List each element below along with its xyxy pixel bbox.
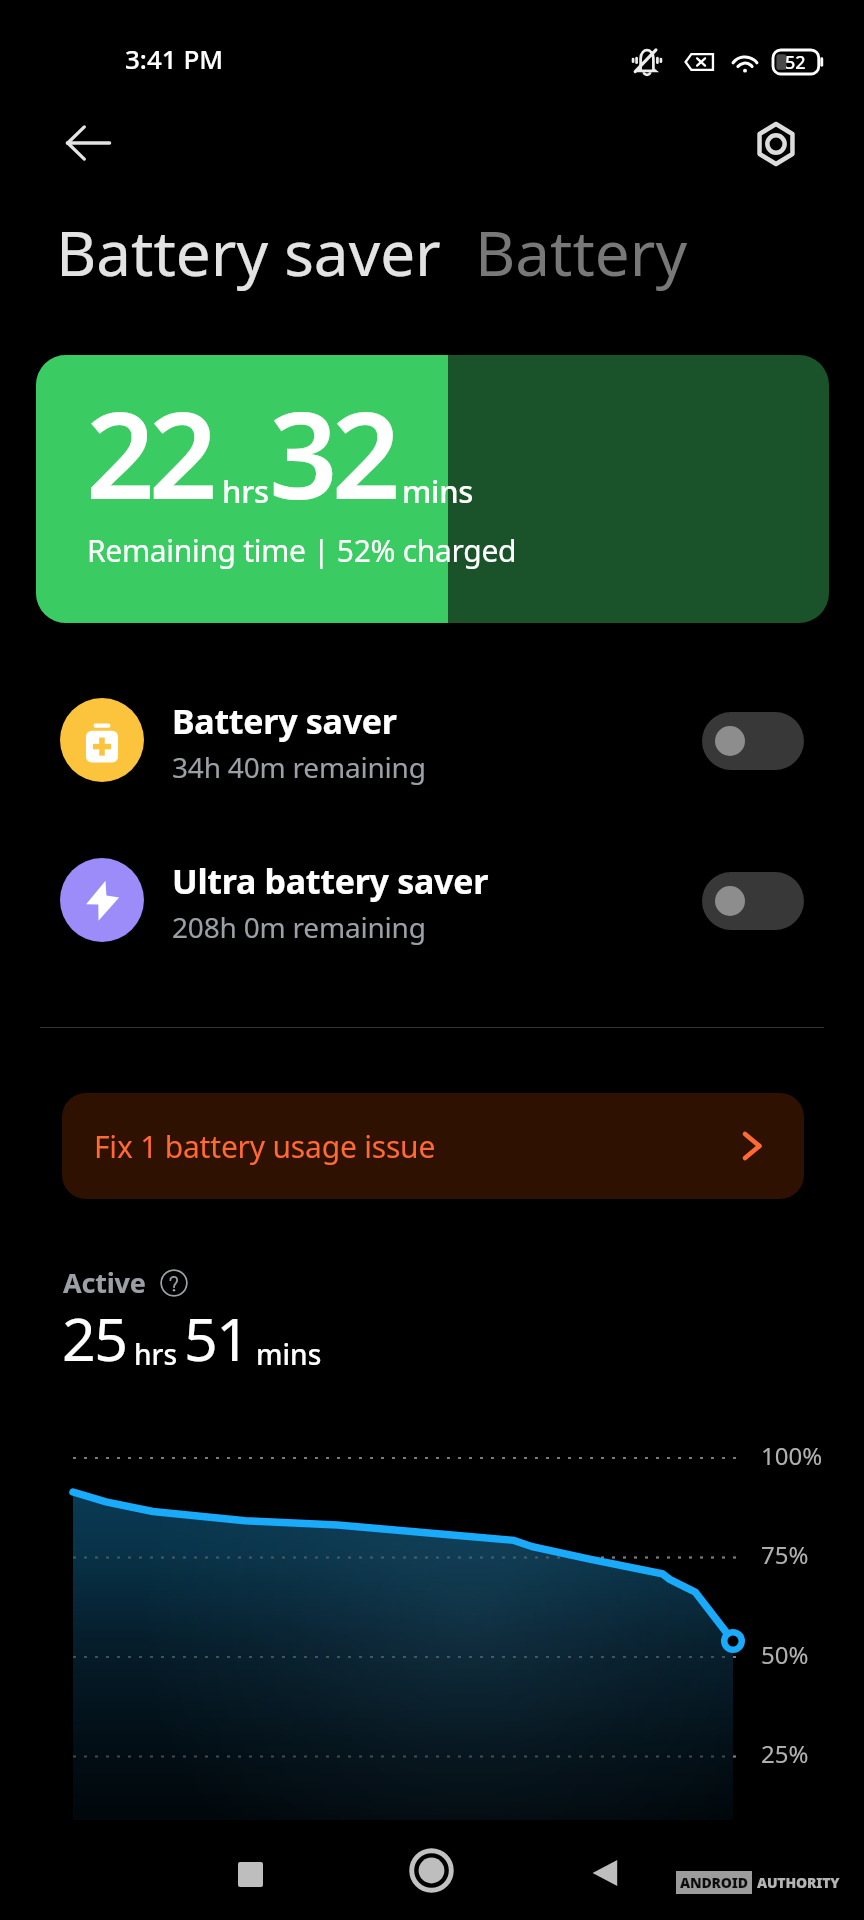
button[interactable]: Toggle: [702, 712, 804, 770]
staticText: Remaining time | 52% charged: [87, 530, 517, 571]
button[interactable]: Home: [401, 1840, 461, 1900]
staticText: Battery: [475, 210, 688, 294]
staticText: mins: [402, 470, 474, 512]
button[interactable]: Fix 1 battery usage issue: [62, 1093, 804, 1199]
staticText: 25: [62, 1298, 127, 1378]
staticText: hrs: [222, 470, 269, 512]
staticText: 51: [184, 1298, 249, 1378]
button[interactable]: Ultra battery saver: [0, 858, 864, 950]
staticText: Battery saver: [56, 210, 441, 294]
staticText: hrs: [134, 1335, 178, 1373]
button[interactable]: Battery: [475, 206, 688, 298]
staticText: 52: [785, 50, 806, 75]
staticText: 25%: [761, 1737, 809, 1770]
button[interactable]: Back: [54, 109, 122, 177]
button[interactable]: Battery saver: [0, 698, 864, 790]
staticText: 208h 0m remaining: [172, 908, 426, 946]
staticText: 22: [86, 371, 212, 534]
button[interactable]: Help: [160, 1269, 188, 1297]
staticText: Battery saver: [172, 698, 397, 744]
staticText: Ultra battery saver: [172, 858, 489, 904]
staticText: 100%: [761, 1439, 823, 1472]
staticText: Active: [63, 1264, 146, 1301]
staticText: ANDROID: [680, 1873, 748, 1892]
button[interactable]: Toggle: [702, 872, 804, 930]
staticText: mins: [256, 1335, 322, 1373]
staticText: 75%: [761, 1538, 809, 1571]
button[interactable]: Back: [576, 1843, 636, 1903]
staticText: 32: [269, 371, 395, 534]
button[interactable]: Recents: [220, 1844, 280, 1904]
staticText: 34h 40m remaining: [172, 748, 426, 786]
button[interactable]: Battery saver: [56, 206, 441, 298]
staticText: AUTHORITY: [757, 1873, 840, 1892]
staticText: 3:41 PM: [125, 41, 224, 76]
staticText: 50%: [761, 1638, 809, 1671]
button[interactable]: Settings: [742, 110, 810, 178]
staticText: Fix 1 battery usage issue: [94, 1126, 436, 1167]
button[interactable]: 22: [36, 355, 829, 623]
